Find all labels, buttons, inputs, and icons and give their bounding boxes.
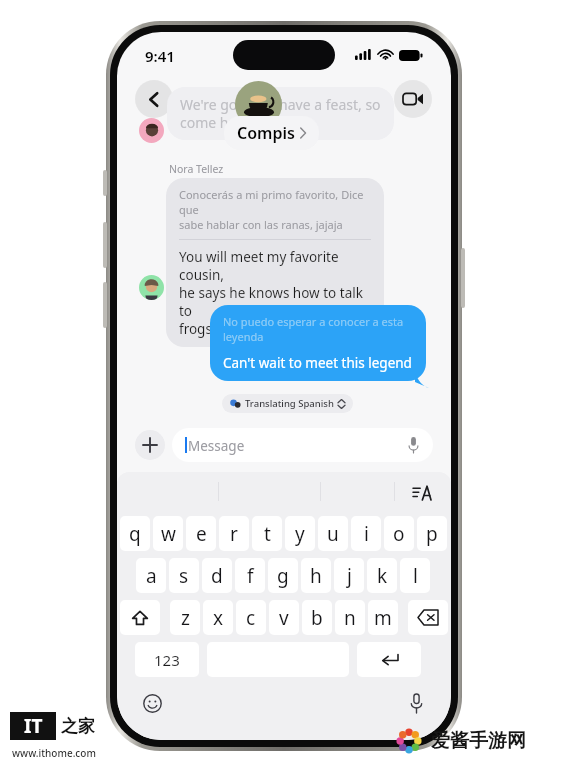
staticText: We're going to have a feast, so come hun… bbox=[180, 95, 381, 132]
button[interactable]: p bbox=[417, 516, 447, 551]
staticText: b bbox=[311, 605, 323, 631]
staticText: Nora Tellez bbox=[169, 162, 224, 176]
button[interactable]: s bbox=[169, 558, 199, 593]
button[interactable]: a bbox=[136, 558, 166, 593]
staticText: You will meet my favorite cousin, he say… bbox=[179, 248, 371, 338]
button[interactable]: Return bbox=[357, 642, 421, 677]
button[interactable]: Dictate bbox=[401, 688, 431, 718]
button[interactable]: o bbox=[384, 516, 414, 551]
staticText: c bbox=[246, 605, 256, 631]
staticText: q bbox=[129, 521, 141, 547]
staticText: Conocerás a mi primo favorito, Dice que … bbox=[179, 187, 371, 232]
button[interactable]: Translating Spanish bbox=[222, 394, 353, 413]
button[interactable]: 123 bbox=[135, 642, 199, 677]
button[interactable]: c bbox=[236, 600, 266, 635]
staticText: IT bbox=[24, 713, 43, 739]
staticText: www.ithome.com bbox=[12, 746, 96, 760]
staticText: n bbox=[344, 605, 356, 631]
button[interactable]: v bbox=[269, 600, 299, 635]
staticText: 123 bbox=[154, 650, 180, 670]
staticText: h bbox=[310, 563, 322, 589]
button[interactable]: Formatting bbox=[409, 480, 435, 504]
staticText: k bbox=[377, 563, 388, 589]
button[interactable]: Emoji bbox=[137, 688, 167, 718]
button[interactable]: Compis bbox=[224, 116, 319, 150]
staticText: p bbox=[426, 521, 438, 547]
button[interactable]: e bbox=[186, 516, 216, 551]
button[interactable]: j bbox=[334, 558, 364, 593]
button[interactable]: h bbox=[301, 558, 331, 593]
button[interactable]: t bbox=[252, 516, 282, 551]
button[interactable]: x bbox=[203, 600, 233, 635]
staticText: Message bbox=[188, 437, 245, 455]
staticText: Translating Spanish bbox=[245, 397, 334, 410]
button[interactable]: Message bbox=[172, 428, 433, 462]
button[interactable]: l bbox=[400, 558, 430, 593]
button[interactable]: d bbox=[202, 558, 232, 593]
button[interactable]: Shift bbox=[120, 600, 160, 635]
button[interactable]: m bbox=[368, 600, 398, 635]
button[interactable]: f bbox=[235, 558, 265, 593]
staticText: v bbox=[279, 605, 289, 631]
button[interactable]: Conocerás a mi primo favorito, Dice que … bbox=[166, 178, 384, 347]
staticText: No puedo esperar a conocer a esta leyend… bbox=[223, 314, 404, 344]
button[interactable]: Add attachment bbox=[135, 430, 165, 460]
staticText: 9:41 bbox=[145, 46, 175, 66]
staticText: Compis bbox=[237, 122, 295, 144]
button[interactable]: FaceTime video call bbox=[394, 80, 432, 118]
staticText: Can't wait to meet this legend bbox=[223, 354, 412, 372]
button[interactable]: g bbox=[268, 558, 298, 593]
staticText: y bbox=[295, 521, 305, 547]
staticText: d bbox=[211, 563, 223, 589]
staticText: a bbox=[146, 563, 157, 589]
button[interactable]: b bbox=[302, 600, 332, 635]
button[interactable]: k bbox=[367, 558, 397, 593]
staticText: o bbox=[393, 521, 405, 547]
staticText: z bbox=[181, 605, 190, 631]
staticText: t bbox=[264, 521, 271, 547]
button[interactable]: z bbox=[170, 600, 200, 635]
button[interactable]: No puedo esperar a conocer a esta leyend… bbox=[210, 305, 426, 381]
button[interactable]: r bbox=[219, 516, 249, 551]
staticText: i bbox=[364, 521, 369, 547]
button[interactable]: Back bbox=[135, 80, 173, 118]
button[interactable]: n bbox=[335, 600, 365, 635]
button[interactable]: w bbox=[153, 516, 183, 551]
staticText: l bbox=[413, 563, 418, 589]
staticText: g bbox=[277, 563, 289, 589]
button[interactable]: q bbox=[120, 516, 150, 551]
staticText: 爱酱手游网 bbox=[431, 729, 526, 753]
staticText: 之家 bbox=[61, 716, 95, 737]
staticText: e bbox=[196, 521, 207, 547]
button[interactable]: Backspace bbox=[408, 600, 448, 635]
staticText: m bbox=[374, 605, 392, 631]
staticText: j bbox=[347, 563, 352, 589]
button[interactable]: u bbox=[318, 516, 348, 551]
staticText: s bbox=[179, 563, 189, 589]
button[interactable]: y bbox=[285, 516, 315, 551]
staticText: w bbox=[161, 521, 176, 547]
staticText: f bbox=[247, 563, 254, 589]
staticText: r bbox=[230, 521, 238, 547]
staticText: x bbox=[213, 605, 224, 631]
staticText: u bbox=[327, 521, 339, 547]
button[interactable]: i bbox=[351, 516, 381, 551]
